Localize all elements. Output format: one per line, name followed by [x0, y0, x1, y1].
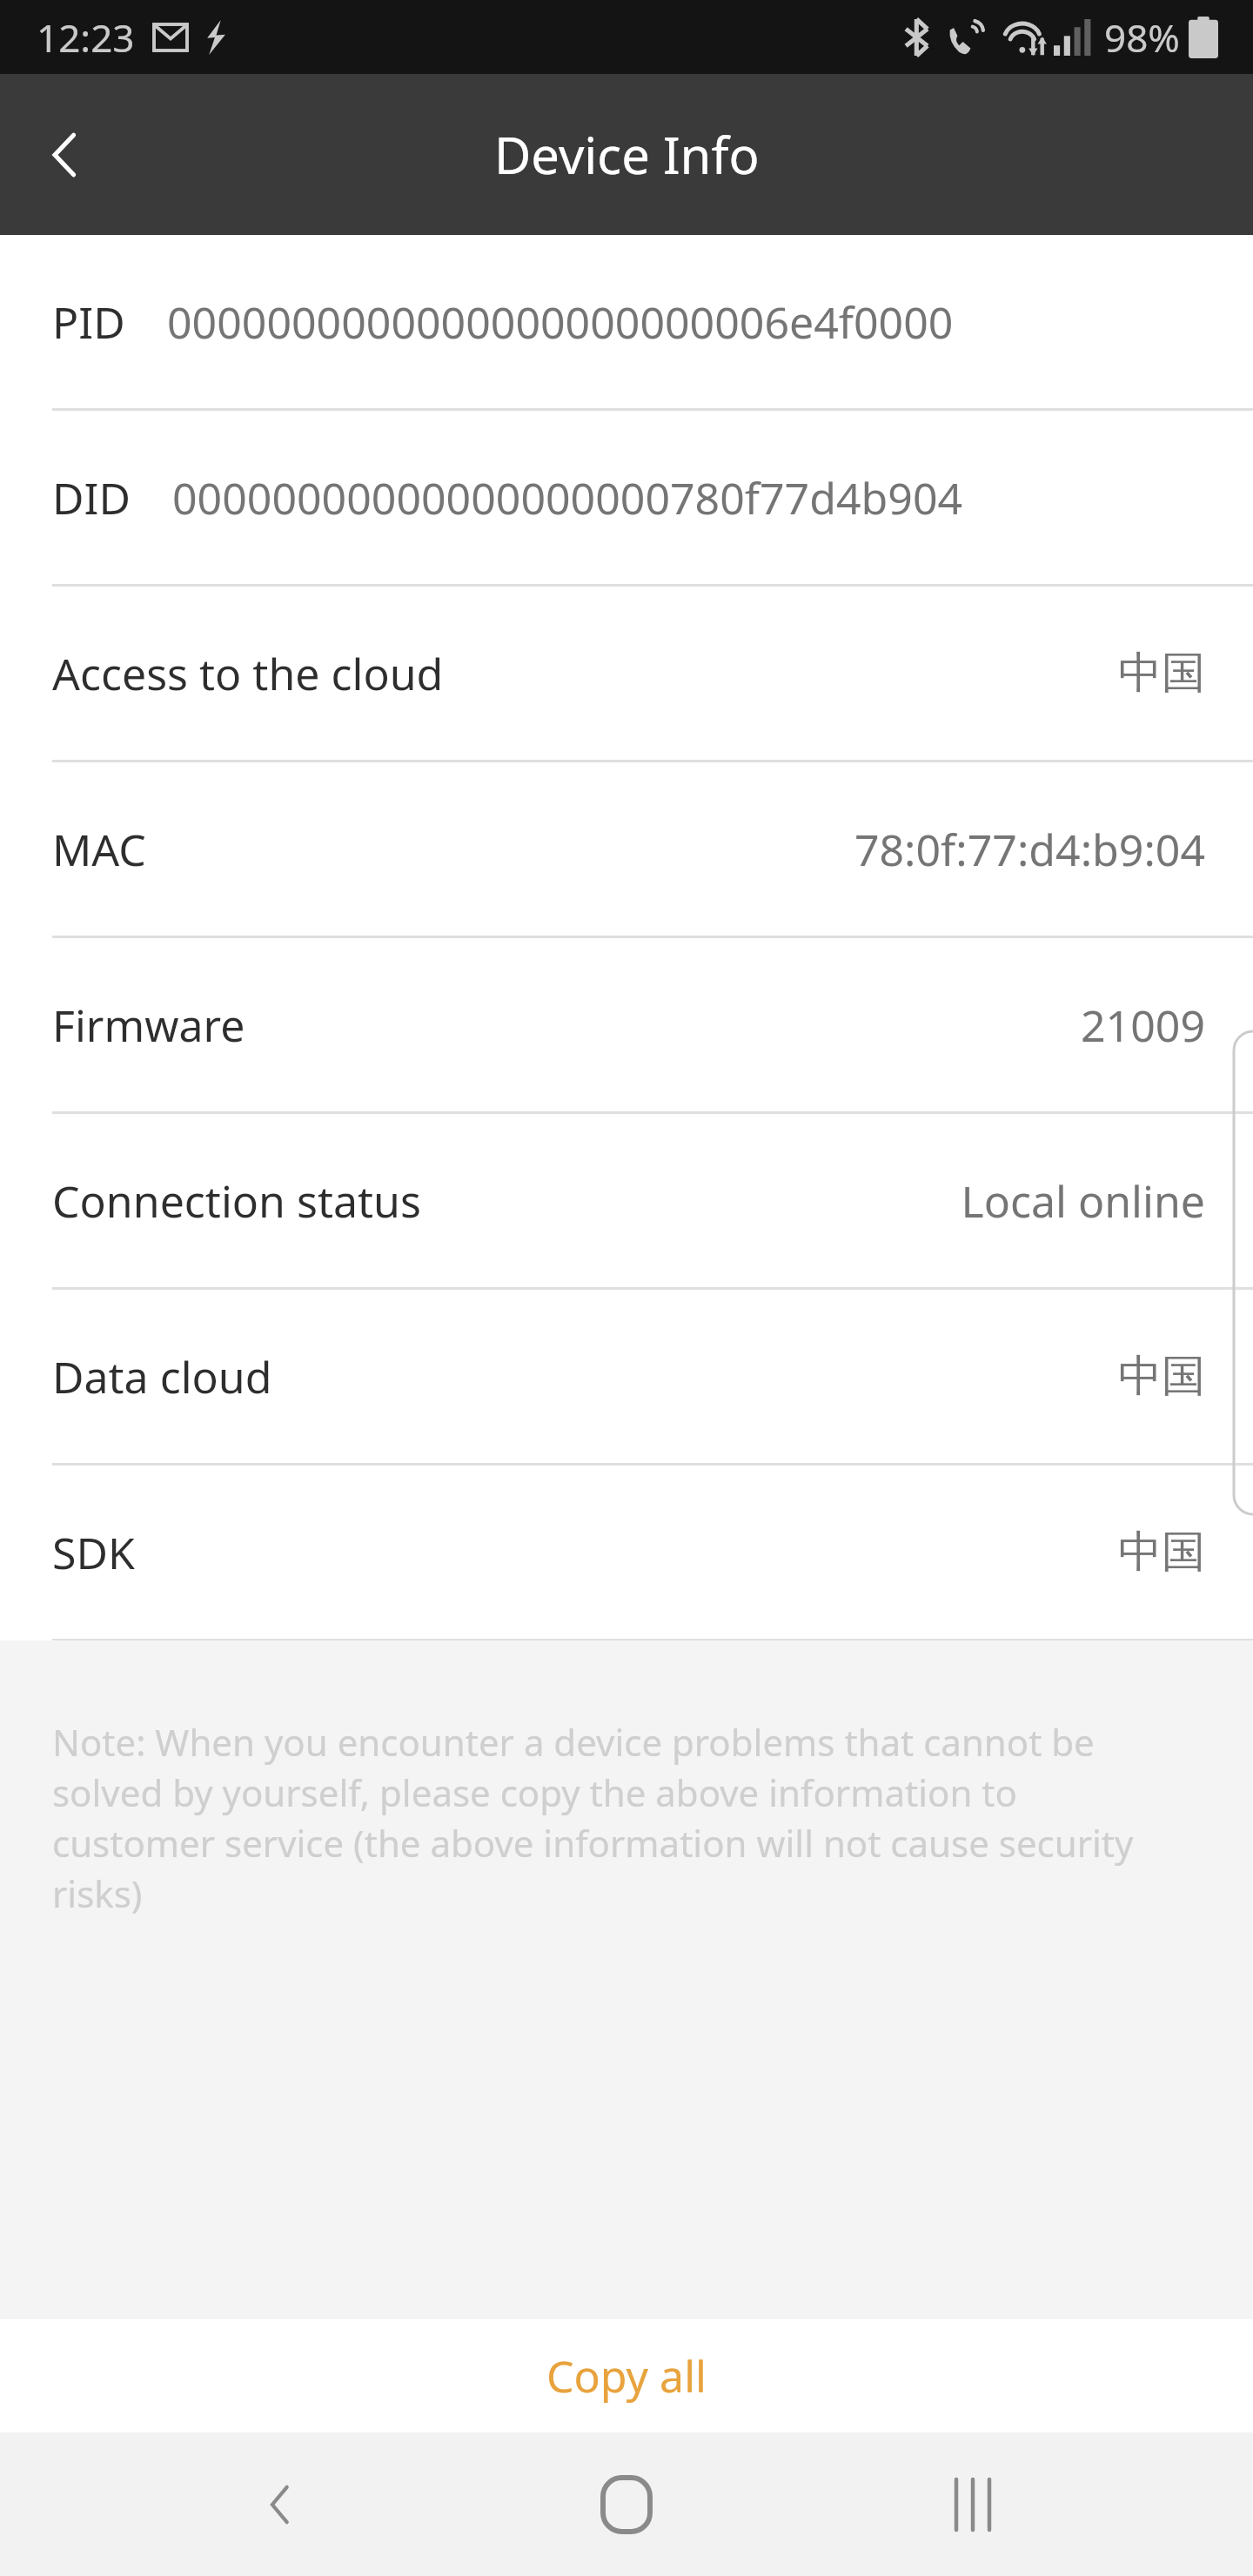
staticText: Connection status	[52, 1171, 421, 1231]
staticText: 中国	[1118, 1349, 1205, 1404]
staticText: SDK	[52, 1523, 135, 1582]
staticText: Device Info	[494, 120, 760, 189]
staticText: 12:23	[37, 11, 135, 64]
staticText: 98%	[1104, 11, 1180, 64]
staticText: MAC	[52, 820, 146, 879]
staticText: 00000000000000000000780f77d4b904	[172, 468, 963, 527]
button[interactable]: PID	[0, 235, 1253, 408]
staticText: 中国	[1118, 646, 1205, 701]
button[interactable]: MAC	[0, 762, 1253, 936]
button[interactable]: SDK	[0, 1466, 1253, 1639]
staticText: 78:0f:77:d4:b9:04	[854, 820, 1205, 879]
staticText: PID	[52, 292, 125, 352]
staticText: Copy all	[546, 2346, 707, 2405]
button[interactable]: Back	[216, 2439, 346, 2570]
staticText: Access to the cloud	[52, 644, 444, 703]
button[interactable]: Firmware	[0, 938, 1253, 1111]
button[interactable]: Connection status	[0, 1114, 1253, 1287]
staticText: Local online	[961, 1171, 1205, 1231]
button[interactable]: Access to the cloud	[0, 587, 1253, 760]
button[interactable]: DID	[0, 411, 1253, 584]
staticText: 0000000000000000000000006e4f0000	[167, 292, 954, 352]
staticText: Data cloud	[52, 1347, 272, 1406]
button[interactable]: Copy all	[0, 2319, 1253, 2432]
button[interactable]: Home	[561, 2439, 692, 2570]
button[interactable]: Back	[0, 90, 131, 220]
staticText: 21009	[1081, 996, 1205, 1055]
staticText: Firmware	[52, 996, 245, 1055]
staticText: DID	[52, 468, 131, 527]
button[interactable]: Data cloud	[0, 1290, 1253, 1463]
button[interactable]: Recent apps	[908, 2439, 1038, 2570]
staticText: Note: When you encounter a device proble…	[52, 1717, 1150, 1918]
staticText: 中国	[1118, 1525, 1205, 1580]
